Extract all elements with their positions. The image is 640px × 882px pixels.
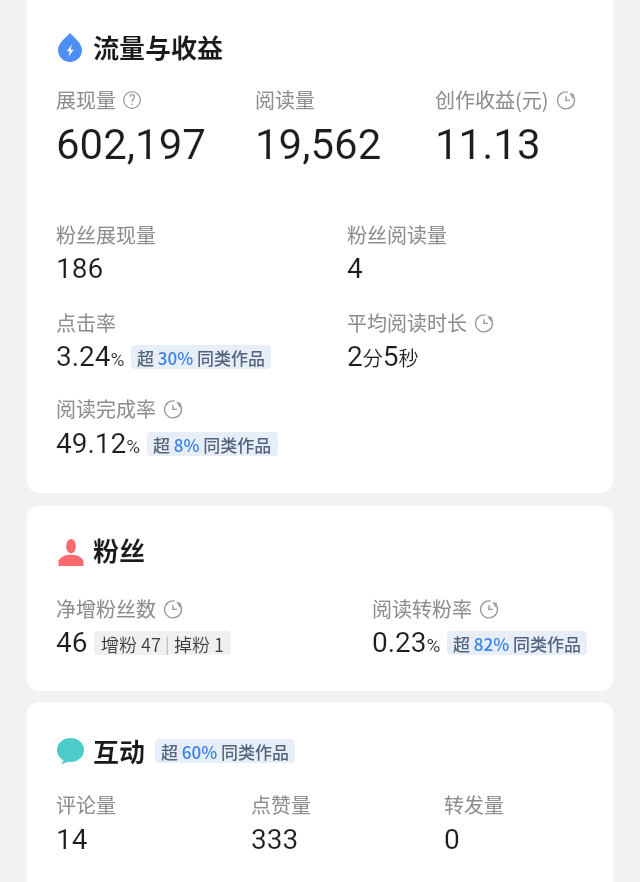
staticText: 净增粉丝数 xyxy=(56,594,156,623)
staticText: 333 xyxy=(251,823,299,856)
staticText: 粉丝阅读量 xyxy=(347,220,447,249)
staticText: 11.13 xyxy=(435,120,541,169)
staticText: 49.12% xyxy=(56,427,141,460)
button[interactable]: 超 30% 同类作品 xyxy=(131,345,271,369)
other: Interaction xyxy=(57,738,84,765)
staticText: 阅读转粉率 xyxy=(372,594,472,623)
staticText: 互动 xyxy=(93,732,146,770)
staticText: 186 xyxy=(56,252,104,285)
staticText: 点赞量 xyxy=(251,790,311,819)
staticText: 46 xyxy=(56,626,88,659)
staticText: 19,562 xyxy=(255,120,382,169)
staticText: 超 82% 同类作品 xyxy=(453,631,581,655)
other: Fans xyxy=(58,539,84,566)
staticText: 超 60% 同类作品 xyxy=(161,739,289,763)
staticText: 创作收益(元) xyxy=(435,85,549,114)
staticText: 粉丝 xyxy=(93,531,146,569)
staticText: 平均阅读时长 xyxy=(347,308,467,337)
staticText: 评论量 xyxy=(56,790,116,819)
other: Traffic and revenue xyxy=(58,33,82,62)
staticText: 3.24% xyxy=(56,340,125,373)
staticText: 转发量 xyxy=(444,790,504,819)
staticText: 粉丝展现量 xyxy=(56,220,156,249)
staticText: 阅读量 xyxy=(255,85,315,114)
button[interactable]: 超 82% 同类作品 xyxy=(447,631,587,655)
staticText: 2分5秒 xyxy=(347,340,419,373)
staticText: 点击率 xyxy=(56,308,116,337)
staticText: 超 30% 同类作品 xyxy=(137,345,265,369)
staticText: 0.23% xyxy=(372,626,441,659)
staticText: 阅读完成率 xyxy=(56,394,156,423)
staticText: 602,197 xyxy=(56,120,206,169)
staticText: 0 xyxy=(444,823,460,856)
staticText: 增粉 47 | 掉粉 1 xyxy=(101,631,224,655)
button[interactable]: 超 8% 同类作品 xyxy=(147,432,278,456)
button[interactable]: 超 60% 同类作品 xyxy=(155,739,295,763)
staticText: 14 xyxy=(56,823,88,856)
staticText: ? xyxy=(129,92,136,108)
staticText: 流量与收益 xyxy=(93,28,224,66)
button[interactable]: 增粉 47 | 掉粉 1 xyxy=(94,631,231,655)
staticText: 展现量 xyxy=(56,85,116,114)
staticText: 超 8% 同类作品 xyxy=(153,432,272,456)
staticText: 4 xyxy=(347,252,363,285)
